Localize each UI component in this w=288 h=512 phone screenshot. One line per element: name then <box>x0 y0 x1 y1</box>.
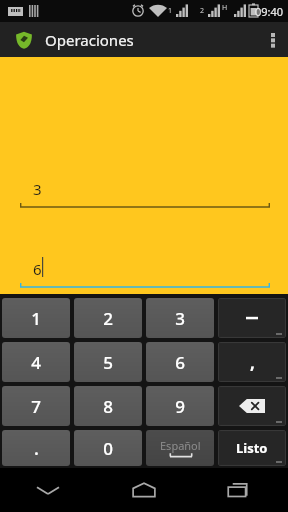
button[interactable]: Listo <box>218 430 286 466</box>
staticText: 3 <box>33 179 42 199</box>
button[interactable]: , <box>218 342 286 382</box>
button[interactable]: 6 <box>20 255 270 289</box>
button[interactable]: 1 <box>2 298 70 338</box>
button[interactable]: 3 <box>146 298 214 338</box>
button[interactable]: Hide keyboard <box>0 468 96 512</box>
button[interactable]: Home <box>96 468 192 512</box>
staticText: 09:40 <box>255 4 284 19</box>
staticText: , <box>250 351 255 374</box>
staticText: 6 <box>175 351 185 374</box>
button[interactable]: 5 <box>74 342 142 382</box>
staticText: 1 <box>31 307 41 330</box>
staticText: H <box>222 3 228 13</box>
button[interactable]: 9 <box>146 386 214 426</box>
staticText: 2 <box>200 6 205 16</box>
button[interactable]: Español <box>146 430 214 466</box>
button[interactable]: 0 <box>74 430 142 466</box>
staticText: Listo <box>236 439 268 457</box>
button[interactable]: 4 <box>2 342 70 382</box>
staticText: Español <box>160 438 201 453</box>
staticText: 4 <box>31 351 41 374</box>
staticText: 0 <box>103 437 113 460</box>
staticText: 9 <box>175 395 185 418</box>
button[interactable]: 8 <box>74 386 142 426</box>
button[interactable] <box>218 298 286 338</box>
button[interactable]: 3 <box>20 175 270 209</box>
button[interactable]: Recent apps <box>192 468 288 512</box>
button[interactable]: 7 <box>2 386 70 426</box>
staticText: . <box>34 436 39 461</box>
button[interactable]: . <box>2 430 70 466</box>
button[interactable]: More options <box>258 22 288 57</box>
button[interactable]: 6 <box>146 342 214 382</box>
staticText: 6 <box>33 259 42 279</box>
staticText: 8 <box>103 395 113 418</box>
staticText: Operaciones <box>45 30 134 50</box>
staticText: 7 <box>31 395 41 418</box>
staticText: 3 <box>175 307 185 330</box>
button[interactable]: 2 <box>74 298 142 338</box>
staticText: 2 <box>103 307 113 330</box>
staticText: 1 <box>168 6 173 16</box>
button[interactable]: Delete <box>218 386 286 426</box>
staticText: 5 <box>103 351 113 374</box>
